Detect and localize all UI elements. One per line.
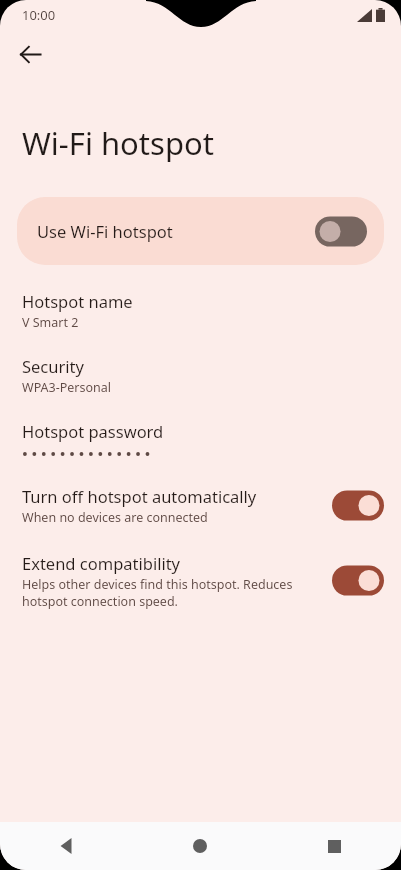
- button[interactable]: Home: [133, 822, 267, 870]
- button[interactable]: Turn off hotspot automatically: [0, 485, 401, 526]
- button[interactable]: Security: [0, 355, 401, 396]
- staticText: When no devices are connected: [22, 509, 208, 526]
- staticText: Use Wi-Fi hotspot: [37, 220, 315, 242]
- button[interactable]: Back: [0, 822, 133, 870]
- staticText: WPA3-Personal: [22, 379, 112, 396]
- staticText: Turn off hotspot automatically: [22, 485, 257, 507]
- staticText: Wi-Fi hotspot: [22, 122, 214, 164]
- button[interactable]: Use Wi-Fi hotspot: [17, 197, 384, 265]
- button[interactable]: Hotspot password: [0, 420, 401, 459]
- staticText: Hotspot name: [22, 290, 133, 312]
- staticText: Helps other devices find this hotspot. R…: [22, 576, 320, 609]
- button[interactable]: Extend compatibility: [0, 552, 401, 609]
- button[interactable]: On: [332, 490, 384, 521]
- staticText: Security: [22, 355, 84, 377]
- staticText: Hotspot password: [22, 420, 164, 442]
- staticText: 10:00: [22, 6, 56, 24]
- staticText: V Smart 2: [22, 314, 79, 331]
- button[interactable]: On: [332, 565, 384, 596]
- button[interactable]: Hotspot name: [0, 290, 401, 331]
- button[interactable]: Back: [8, 32, 52, 76]
- staticText: Extend compatibility: [22, 552, 181, 574]
- button[interactable]: Off: [315, 216, 367, 247]
- button[interactable]: Recent apps: [267, 822, 401, 870]
